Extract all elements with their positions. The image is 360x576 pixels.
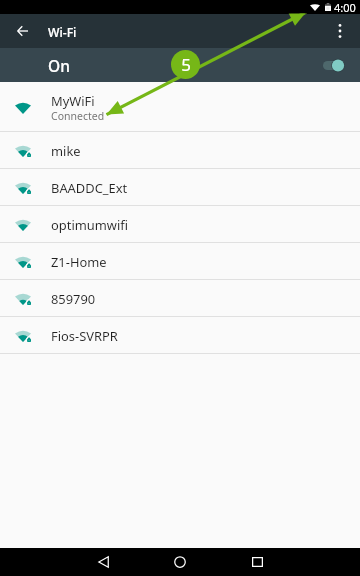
staticText: MyWiFi (51, 92, 95, 110)
button[interactable]: Back (79, 548, 127, 576)
staticText: 859790 (51, 290, 96, 308)
staticText: Connected (51, 109, 105, 123)
button[interactable]: 859790 (0, 280, 360, 316)
staticText: mike (51, 142, 81, 160)
button[interactable]: Navigate up (6, 15, 38, 47)
button[interactable]: Recent apps (233, 548, 281, 576)
staticText: 4:00 (334, 0, 356, 14)
button[interactable]: Z1-Home (0, 243, 360, 279)
staticText: Wi-Fi (48, 24, 77, 41)
staticText: On (48, 55, 70, 76)
button[interactable]: mike (0, 132, 360, 168)
staticText: optimumwifi (51, 216, 128, 234)
button[interactable]: More options (324, 15, 356, 47)
staticText: BAADDC_Ext (51, 179, 128, 197)
button[interactable]: BAADDC_Ext (0, 169, 360, 205)
button[interactable]: Home (156, 548, 204, 576)
button[interactable]: Fios-SVRPR (0, 317, 360, 353)
button[interactable]: optimumwifi (0, 206, 360, 242)
staticText: Fios-SVRPR (51, 327, 118, 345)
staticText: 5 (181, 53, 191, 76)
staticText: Z1-Home (51, 253, 107, 271)
button[interactable]: On (0, 48, 360, 82)
button[interactable]: MyWiFi (0, 82, 360, 131)
